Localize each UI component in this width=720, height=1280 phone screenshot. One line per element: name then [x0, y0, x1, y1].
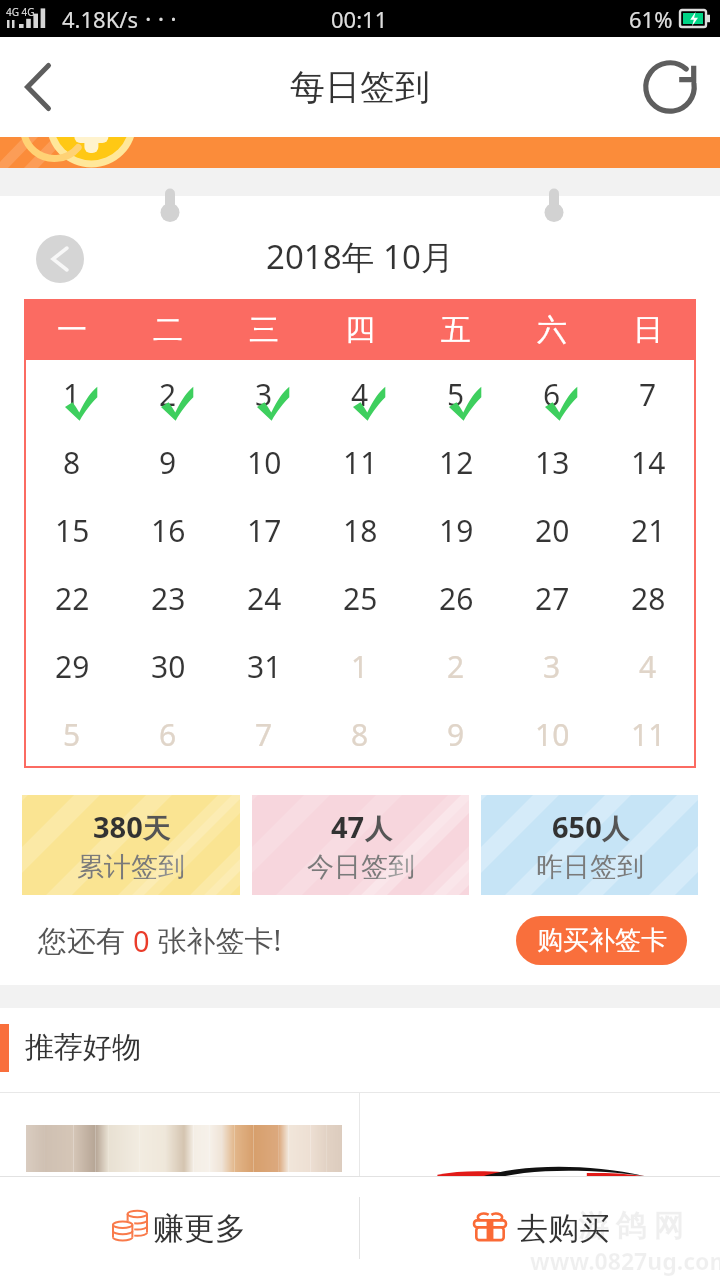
- button[interactable]: 22: [24, 564, 120, 632]
- button[interactable]: 15: [24, 496, 120, 564]
- button[interactable]: 12: [408, 428, 504, 496]
- button[interactable]: 9: [408, 700, 504, 768]
- button[interactable]: 5: [408, 360, 504, 428]
- button[interactable]: 7: [600, 360, 696, 428]
- staticText: 10: [535, 714, 570, 755]
- button[interactable]: 13: [504, 428, 600, 496]
- staticText: 10: [247, 442, 282, 483]
- staticText: 2: [447, 646, 465, 687]
- staticText: 22: [55, 578, 90, 619]
- staticText: 6: [543, 374, 561, 415]
- button[interactable]: 购买补签卡: [516, 916, 687, 965]
- button[interactable]: 2: [408, 632, 504, 700]
- button[interactable]: [360, 1093, 720, 1176]
- staticText: 61%: [629, 4, 673, 34]
- button[interactable]: 17: [216, 496, 312, 564]
- staticText: 6: [159, 714, 177, 755]
- button[interactable]: 18: [312, 496, 408, 564]
- staticText: 赚更多: [153, 1209, 246, 1248]
- button[interactable]: 11: [312, 428, 408, 496]
- button[interactable]: 日: [600, 299, 696, 360]
- button[interactable]: 2: [120, 360, 216, 428]
- button[interactable]: 31: [216, 632, 312, 700]
- staticText: 47: [331, 807, 365, 846]
- button[interactable]: 14: [600, 428, 696, 496]
- button[interactable]: 20: [504, 496, 600, 564]
- button[interactable]: 11: [600, 700, 696, 768]
- button[interactable]: 23: [120, 564, 216, 632]
- button[interactable]: Back: [0, 37, 76, 137]
- staticText: 19: [439, 510, 474, 551]
- staticText: 7: [255, 714, 273, 755]
- button[interactable]: 16: [120, 496, 216, 564]
- button[interactable]: 10: [216, 428, 312, 496]
- button[interactable]: 8: [312, 700, 408, 768]
- staticText: 650: [552, 807, 602, 846]
- staticText: 4: [351, 374, 369, 415]
- staticText: 累计签到: [77, 850, 185, 884]
- button[interactable]: [0, 1093, 359, 1176]
- button[interactable]: 380: [22, 795, 240, 895]
- button[interactable]: Previous month: [36, 235, 84, 283]
- staticText: 日: [633, 311, 663, 349]
- staticText: 9: [159, 442, 177, 483]
- staticText: 17: [247, 510, 282, 551]
- button[interactable]: 650: [481, 795, 698, 895]
- staticText: 1: [63, 374, 81, 415]
- staticText: 5: [447, 374, 465, 415]
- button[interactable]: 1: [312, 632, 408, 700]
- staticText: www.0827ug.com: [530, 1245, 720, 1276]
- button[interactable]: 4: [600, 632, 696, 700]
- button[interactable]: 27: [504, 564, 600, 632]
- button[interactable]: [0, 137, 720, 168]
- button[interactable]: 10: [504, 700, 600, 768]
- staticText: 30: [151, 646, 186, 687]
- button[interactable]: 3: [504, 632, 600, 700]
- button[interactable]: 26: [408, 564, 504, 632]
- button[interactable]: 二: [120, 299, 216, 360]
- staticText: 张补签卡!: [150, 920, 282, 960]
- button[interactable]: 5: [24, 700, 120, 768]
- button[interactable]: 19: [408, 496, 504, 564]
- button[interactable]: 赚更多: [0, 1176, 359, 1280]
- button[interactable]: 28: [600, 564, 696, 632]
- button[interactable]: 6: [120, 700, 216, 768]
- button[interactable]: 四: [312, 299, 408, 360]
- button[interactable]: 47: [252, 795, 469, 895]
- button[interactable]: 1: [24, 360, 120, 428]
- staticText: 四: [345, 311, 375, 349]
- staticText: 380: [93, 807, 143, 846]
- staticText: 4.18K/s: [62, 4, 138, 34]
- staticText: 8: [351, 714, 369, 755]
- staticText: 今日签到: [307, 850, 415, 884]
- staticText: 00:11: [331, 4, 388, 34]
- button[interactable]: 7: [216, 700, 312, 768]
- button[interactable]: Refresh: [619, 37, 720, 137]
- staticText: 18: [343, 510, 378, 551]
- button[interactable]: 29: [24, 632, 120, 700]
- button[interactable]: 六: [504, 299, 600, 360]
- staticText: 11: [343, 442, 378, 483]
- button[interactable]: 一: [24, 299, 120, 360]
- button[interactable]: 4: [312, 360, 408, 428]
- staticText: 游 鸽 网: [578, 1204, 684, 1245]
- staticText: 昨日签到: [536, 850, 644, 884]
- staticText: 25: [343, 578, 378, 619]
- button[interactable]: 9: [120, 428, 216, 496]
- button[interactable]: 6: [504, 360, 600, 428]
- button[interactable]: 去购买: [360, 1176, 720, 1280]
- button[interactable]: 21: [600, 496, 696, 564]
- button[interactable]: 24: [216, 564, 312, 632]
- staticText: 26: [439, 578, 474, 619]
- button[interactable]: 8: [24, 428, 120, 496]
- button[interactable]: 三: [216, 299, 312, 360]
- button[interactable]: 五: [408, 299, 504, 360]
- staticText: 15: [55, 510, 90, 551]
- staticText: 人: [365, 812, 392, 846]
- staticText: 4G 4G: [6, 5, 35, 19]
- button[interactable]: 25: [312, 564, 408, 632]
- button[interactable]: 30: [120, 632, 216, 700]
- button[interactable]: 推荐好物: [0, 1008, 720, 1092]
- staticText: 13: [535, 442, 570, 483]
- button[interactable]: 3: [216, 360, 312, 428]
